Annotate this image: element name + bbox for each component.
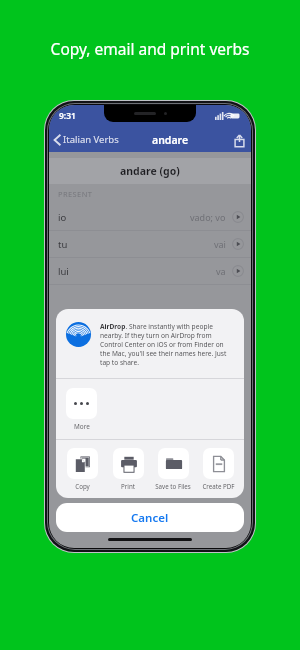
staticText: Save to Files [155, 482, 191, 490]
button[interactable]: Copy [64, 448, 101, 490]
staticText: andare (go) [120, 164, 180, 178]
staticText: vado; vo [190, 211, 226, 223]
button[interactable]: Print [110, 448, 146, 490]
staticText: More [74, 422, 90, 431]
staticText: AirDrop. Share instantly with people nea… [100, 322, 234, 367]
button[interactable]: io [49, 204, 251, 231]
staticText: va [216, 265, 226, 277]
button[interactable]: tu [49, 231, 251, 258]
button[interactable]: Share [227, 128, 251, 152]
button[interactable]: lui [49, 258, 251, 285]
staticText: PRESENT [58, 189, 93, 199]
staticText: Copy [75, 482, 90, 490]
staticText: Copy, email and print verbs [0, 38, 300, 59]
staticText: andare [152, 133, 189, 147]
staticText: Cancel [131, 510, 169, 526]
staticText: tu [58, 238, 68, 251]
staticText: Create PDF [202, 482, 235, 490]
staticText: Print [121, 482, 135, 490]
staticText: 9:31 [59, 110, 76, 122]
staticText: Italian Verbs [63, 133, 119, 146]
button[interactable]: Cancel [56, 503, 244, 532]
staticText: lui [58, 265, 69, 278]
staticText: vai [214, 238, 226, 250]
staticText: io [58, 211, 67, 224]
button[interactable]: Italian Verbs [49, 127, 123, 152]
button[interactable]: Save to Files [155, 448, 191, 490]
button[interactable]: Create PDF [200, 448, 236, 490]
button[interactable]: More [66, 388, 97, 431]
